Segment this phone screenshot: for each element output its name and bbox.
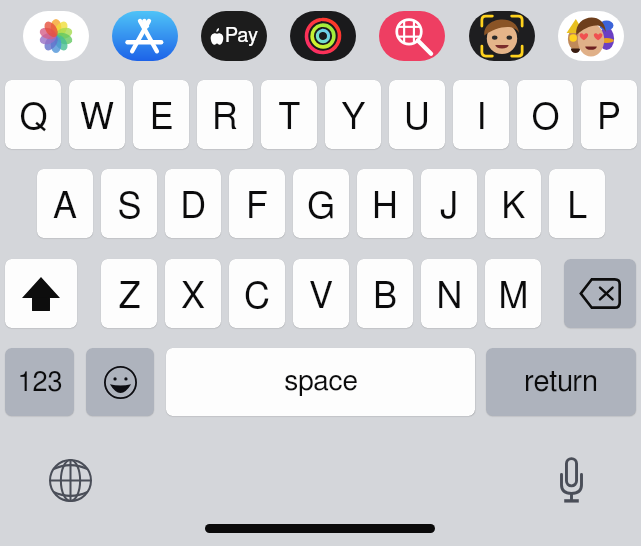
button[interactable]: L bbox=[549, 169, 605, 238]
button[interactable]: J bbox=[421, 169, 477, 238]
staticText: G bbox=[307, 189, 335, 225]
button[interactable]: K bbox=[485, 169, 541, 238]
staticText: I bbox=[476, 100, 487, 136]
staticText: 123 bbox=[17, 369, 63, 396]
button[interactable]: Y bbox=[325, 80, 381, 149]
staticText: L bbox=[567, 189, 588, 225]
staticText: S bbox=[117, 189, 142, 225]
button[interactable]: Fitness bbox=[290, 11, 356, 61]
button[interactable]: S bbox=[101, 169, 157, 238]
button[interactable]: Dictation bbox=[544, 452, 599, 507]
staticText: O bbox=[531, 100, 560, 136]
button[interactable]: Q bbox=[5, 80, 61, 149]
button[interactable]: T bbox=[261, 80, 317, 149]
button[interactable]: Memoji bbox=[469, 11, 535, 61]
button[interactable]: F bbox=[229, 169, 285, 238]
button[interactable]: Stickers bbox=[558, 11, 624, 61]
staticText: U bbox=[404, 100, 430, 136]
button[interactable]: return bbox=[486, 348, 636, 416]
button[interactable]: W bbox=[69, 80, 125, 149]
button[interactable]: H bbox=[357, 169, 413, 238]
button[interactable]: Change keyboard language bbox=[43, 453, 98, 508]
staticText: W bbox=[80, 100, 114, 136]
button[interactable]: V bbox=[293, 259, 349, 328]
staticText: P bbox=[597, 100, 621, 136]
staticText: E bbox=[150, 100, 173, 136]
staticText: B bbox=[373, 279, 397, 315]
button[interactable]: C bbox=[229, 259, 285, 328]
button[interactable]: Backspace bbox=[564, 259, 636, 328]
button[interactable]: Z bbox=[101, 259, 157, 328]
button[interactable]: Emoji bbox=[86, 348, 154, 416]
staticText: space bbox=[284, 368, 358, 396]
staticText: K bbox=[501, 189, 526, 225]
staticText: Q bbox=[19, 100, 48, 136]
button[interactable]: I bbox=[453, 80, 509, 149]
button[interactable]: Numbers bbox=[5, 348, 74, 416]
staticText: Z bbox=[118, 279, 141, 315]
staticText: T bbox=[278, 100, 301, 136]
button[interactable]: X bbox=[165, 259, 221, 328]
staticText: Pay bbox=[225, 26, 258, 46]
staticText: N bbox=[436, 279, 463, 315]
button[interactable]: Photos bbox=[23, 11, 89, 61]
staticText: J bbox=[439, 189, 459, 225]
button[interactable]: E bbox=[133, 80, 189, 149]
staticText: D bbox=[180, 189, 206, 225]
button[interactable]: App Store bbox=[112, 11, 178, 61]
staticText: R bbox=[212, 100, 238, 136]
staticText: V bbox=[309, 279, 333, 315]
button[interactable]: A bbox=[37, 169, 93, 238]
button[interactable]: U bbox=[389, 80, 445, 149]
staticText: H bbox=[372, 189, 398, 225]
button[interactable]: Apple Pay bbox=[201, 11, 267, 61]
button[interactable]: M bbox=[485, 259, 541, 328]
button[interactable]: P bbox=[581, 80, 637, 149]
button[interactable]: G bbox=[293, 169, 349, 238]
staticText: Y bbox=[341, 100, 366, 136]
staticText: return bbox=[524, 368, 598, 397]
staticText: M bbox=[498, 279, 529, 315]
button[interactable]: R bbox=[197, 80, 253, 149]
button[interactable]: D bbox=[165, 169, 221, 238]
staticText: F bbox=[246, 189, 268, 225]
staticText: C bbox=[244, 279, 270, 315]
button[interactable]: B bbox=[357, 259, 413, 328]
button[interactable]: N bbox=[421, 259, 477, 328]
button[interactable]: O bbox=[517, 80, 573, 149]
button[interactable]: Images search bbox=[379, 11, 445, 61]
button[interactable]: Shift bbox=[5, 259, 77, 328]
staticText: A bbox=[53, 189, 77, 225]
staticText: X bbox=[181, 279, 205, 315]
button[interactable]: space bbox=[166, 348, 475, 416]
